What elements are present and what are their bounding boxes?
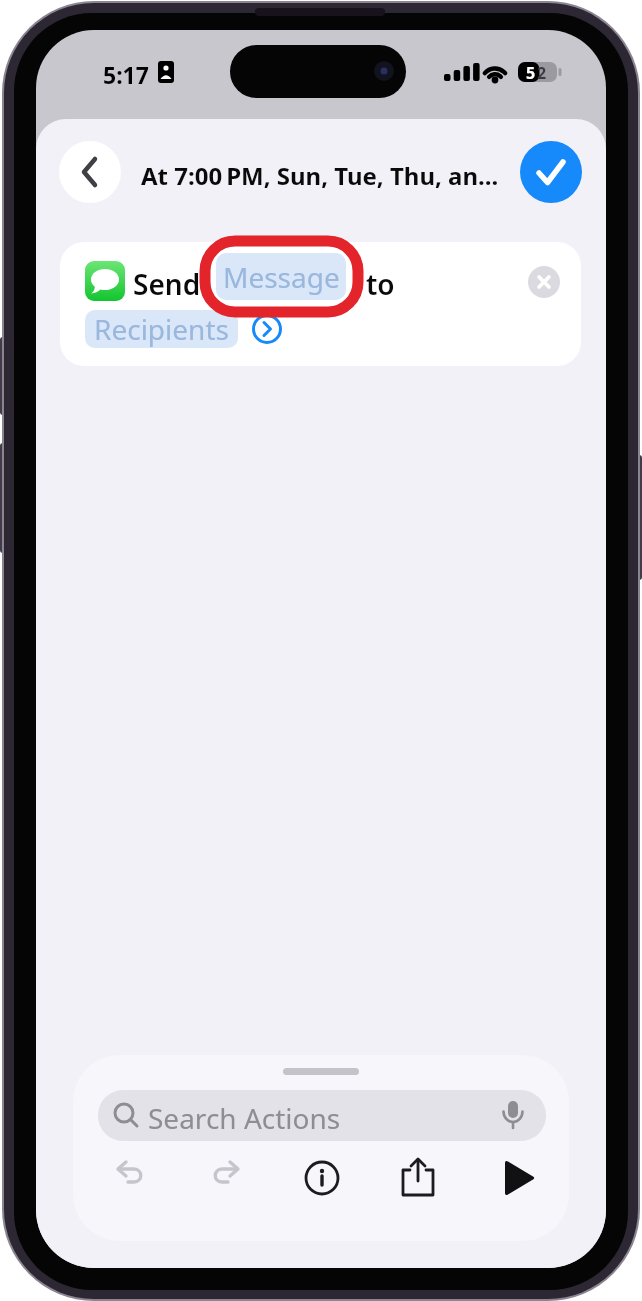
button[interactable]: Message: [216, 253, 346, 300]
staticText: Send: [133, 265, 201, 303]
button[interactable]: [60, 242, 581, 366]
button[interactable]: [388, 1155, 448, 1203]
button[interactable]: Recipients: [85, 310, 238, 348]
staticText: 5:17: [103, 59, 149, 90]
button[interactable]: [196, 1155, 256, 1203]
button[interactable]: [528, 266, 560, 298]
staticText: 2: [537, 62, 547, 84]
staticText: Search Actions: [148, 1099, 341, 1137]
button[interactable]: [292, 1155, 352, 1203]
button[interactable]: [59, 141, 121, 203]
button[interactable]: [484, 1155, 544, 1203]
staticText: to: [366, 265, 395, 303]
staticText: Message: [223, 258, 340, 296]
staticText: At 7:00 PM, Sun, Tue, Thu, an...: [141, 159, 499, 192]
button[interactable]: [251, 313, 283, 345]
staticText: 5: [526, 62, 536, 84]
staticText: Recipients: [94, 310, 229, 348]
button[interactable]: Search Actions: [98, 1090, 546, 1141]
button[interactable]: [520, 141, 582, 203]
button[interactable]: [100, 1155, 160, 1203]
